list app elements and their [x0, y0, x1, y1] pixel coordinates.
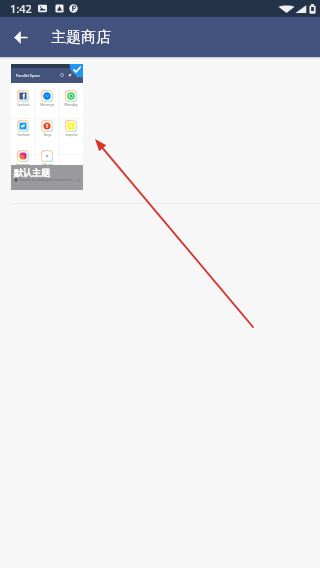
staticText: Messenger [40, 103, 55, 107]
staticText: Parallel Space [16, 73, 40, 78]
staticText: WhatsApp [64, 103, 78, 107]
staticText: Snapchat [65, 133, 78, 137]
staticText: 主题商店 [51, 28, 111, 47]
staticText: Facebook [17, 103, 30, 107]
staticText: Tango [43, 133, 52, 137]
button[interactable]: 默认主题 theme, selected [11, 64, 83, 190]
button[interactable]: Back [6, 23, 34, 51]
staticText: 1:42 [10, 1, 32, 16]
staticText: 默认主题 [14, 167, 50, 178]
staticText: Facebook [17, 133, 30, 137]
staticText: Add app [42, 163, 53, 167]
staticText: Instagram [16, 163, 30, 167]
staticText: Browse for what you're interested... [20, 178, 74, 182]
